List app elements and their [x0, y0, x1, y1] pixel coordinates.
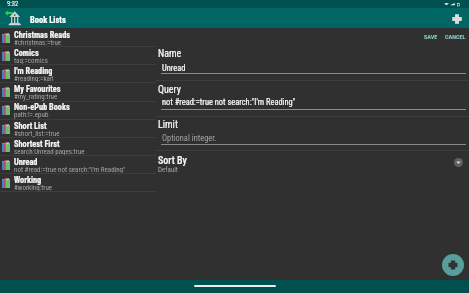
button[interactable]: I'm Reading [0, 64, 156, 82]
staticText: Non-ePub Books [14, 102, 70, 112]
button[interactable]: Comics [0, 46, 156, 64]
staticText: Comics [14, 48, 39, 58]
button[interactable] [156, 80, 469, 116]
staticText: Unread [162, 63, 186, 73]
button[interactable] [156, 44, 469, 80]
staticText: Name [158, 48, 182, 60]
staticText: Limit [158, 119, 178, 131]
staticText: Unread [14, 157, 38, 167]
staticText: search:Unread pages:true [14, 148, 85, 156]
button[interactable]: Add book list [449, 11, 465, 27]
staticText: #reading:=karl [14, 75, 54, 83]
staticText: Working [14, 175, 42, 185]
staticText: #short_list:=true [14, 130, 60, 138]
staticText: Query [158, 84, 181, 96]
staticText: SAVE [424, 33, 438, 40]
button[interactable]: My Favourites [0, 82, 156, 100]
staticText: Default [158, 166, 178, 174]
staticText: Shortest First [14, 139, 60, 149]
staticText: Short List [14, 121, 47, 131]
button[interactable]: Shortest First [0, 137, 156, 155]
button[interactable] [156, 150, 469, 178]
button[interactable]: Create new book list [442, 254, 464, 276]
staticText: Sort By [158, 155, 187, 167]
button[interactable]: Unread [0, 155, 156, 173]
staticText: path:!=.epub [14, 111, 49, 119]
button[interactable]: Navigate up [0, 8, 27, 28]
button[interactable]: Short List [0, 119, 156, 137]
staticText: not #read:=true not search:"I'm Reading" [162, 97, 296, 107]
button[interactable]: SAVE [420, 30, 442, 43]
staticText: CANCEL [445, 33, 466, 40]
button[interactable]: Expand sort options [454, 158, 463, 167]
staticText: My Favourites [14, 84, 61, 94]
staticText: Book Lists [30, 15, 66, 25]
staticText: tag:=comics [14, 57, 48, 65]
staticText: not #read:=true not search:"I'm Reading" [14, 166, 126, 174]
button[interactable]: Christmas Reads [0, 28, 156, 46]
staticText: 9:32 [7, 0, 19, 8]
staticText: #christmas:=true [14, 39, 62, 47]
button[interactable]: CANCEL [441, 30, 469, 43]
button[interactable] [156, 116, 469, 150]
staticText: Christmas Reads [14, 30, 71, 40]
button[interactable]: Non-ePub Books [0, 100, 156, 118]
staticText: Optional integer. [162, 133, 217, 143]
staticText: I'm Reading [14, 66, 53, 76]
button[interactable]: Working [0, 173, 156, 191]
staticText: #working:true [14, 184, 53, 192]
staticText: #my_rating:true [14, 93, 58, 101]
